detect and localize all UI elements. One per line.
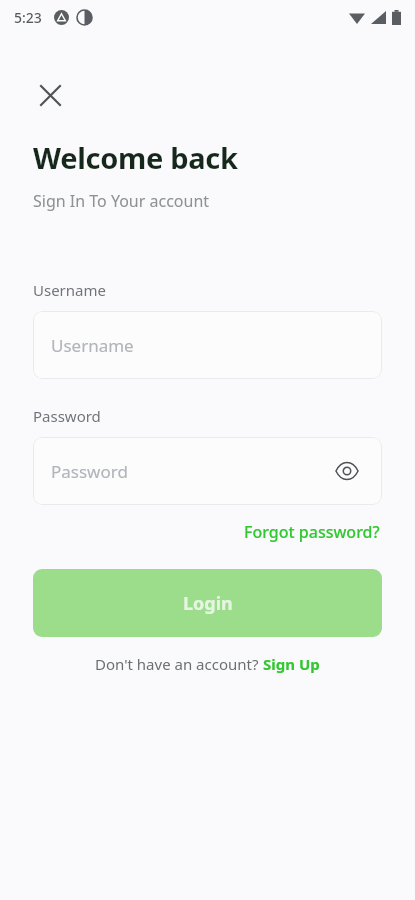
staticText: Username (33, 280, 106, 300)
button[interactable]: Sign Up (263, 654, 320, 674)
button[interactable]: Close (33, 78, 67, 112)
staticText: Username (51, 334, 364, 357)
button[interactable]: Login (33, 569, 382, 637)
button[interactable]: Forgot password? (242, 517, 382, 547)
staticText: Sign Up (263, 654, 320, 674)
button[interactable]: Username (33, 311, 382, 379)
staticText: Welcome back (33, 138, 238, 177)
button[interactable]: Show password (330, 454, 364, 488)
staticText: Login (183, 591, 233, 616)
staticText: Password (51, 460, 330, 483)
button[interactable]: Password (33, 437, 382, 505)
staticText: 5:23 (14, 8, 42, 27)
staticText: Don't have an account? (95, 654, 263, 674)
staticText: Password (33, 406, 101, 426)
staticText: Forgot password? (244, 521, 380, 543)
staticText: Sign In To Your account (33, 190, 210, 212)
